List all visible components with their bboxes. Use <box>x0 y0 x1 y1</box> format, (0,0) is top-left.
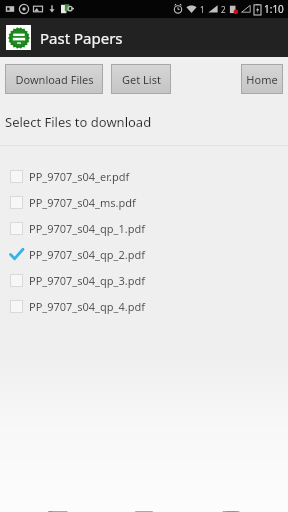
button[interactable]: PP_9707_s04_ms.pdf <box>0 189 288 215</box>
staticText: 2 <box>221 4 226 15</box>
staticText: Get List <box>122 72 161 87</box>
staticText: 1:10 <box>264 2 284 16</box>
button[interactable]: Get List <box>111 64 171 94</box>
staticText: 1 <box>200 4 205 15</box>
button[interactable]: PP_9707_s04_qp_4.pdf <box>0 293 288 319</box>
staticText: Past Papers <box>40 28 123 48</box>
staticText: Home <box>246 72 278 87</box>
button[interactable]: PP_9707_s04_qp_1.pdf <box>0 215 288 241</box>
button[interactable]: Download Files <box>5 64 103 94</box>
button[interactable]: Home <box>241 64 283 94</box>
staticText: PP_9707_s04_ms.pdf <box>29 195 136 210</box>
button[interactable]: PP_9707_s04_qp_3.pdf <box>0 267 288 293</box>
staticText: PP_9707_s04_qp_4.pdf <box>29 299 145 314</box>
staticText: PP_9707_s04_qp_1.pdf <box>29 221 145 236</box>
staticText: PP_9707_s04_qp_2.pdf <box>29 247 145 262</box>
button[interactable]: PP_9707_s04_qp_2.pdf <box>0 241 288 267</box>
staticText: PP_9707_s04_qp_3.pdf <box>29 273 145 288</box>
button[interactable]: PP_9707_s04_er.pdf <box>0 163 288 189</box>
staticText: PP_9707_s04_er.pdf <box>29 169 130 184</box>
staticText: Select Files to download <box>5 113 152 131</box>
staticText: Download Files <box>15 72 94 87</box>
